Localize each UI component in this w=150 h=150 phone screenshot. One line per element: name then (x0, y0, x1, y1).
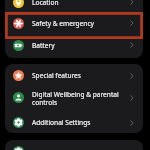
button[interactable]: Safety and emergency (5, 13, 143, 33)
staticText: Digital Wellbeing & parental controls (32, 90, 129, 107)
staticText: Special features (32, 71, 81, 80)
button[interactable]: Battery (5, 33, 143, 58)
staticText: Safety & emergency (32, 19, 94, 28)
staticText: Location (32, 0, 59, 7)
button[interactable]: More settings (5, 140, 143, 150)
button[interactable]: Digital Wellbeing and parental controls (5, 87, 143, 111)
other: Highlighted item (5, 12, 143, 39)
staticText: Additional Settings (32, 118, 91, 127)
button[interactable]: Special features (5, 64, 143, 87)
button[interactable]: Additional Settings (5, 111, 143, 133)
button[interactable]: Location (5, 0, 143, 13)
staticText: Battery (32, 41, 55, 50)
